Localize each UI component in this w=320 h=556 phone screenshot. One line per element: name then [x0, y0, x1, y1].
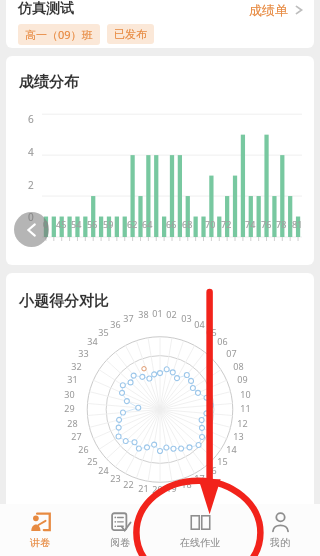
staticText: 成绩分布 [19, 73, 79, 92]
staticText: 小题得分对比 [19, 292, 109, 311]
staticText: 12 [237, 417, 248, 429]
staticText: 74 [245, 218, 256, 230]
staticText: 01 [152, 307, 163, 319]
button[interactable]: 阅卷 [80, 504, 160, 556]
staticText: 高一（09）班 [25, 27, 93, 42]
staticText: 29 [64, 402, 75, 414]
staticText: 20 [152, 483, 163, 495]
staticText: 72 [221, 218, 232, 230]
staticText: 27 [71, 430, 82, 442]
staticText: 0 [28, 210, 34, 224]
staticText: 56 [87, 218, 98, 230]
staticText: 06 [217, 335, 228, 347]
staticText: 6 [28, 112, 34, 126]
button[interactable]: 成绩单 [247, 0, 305, 20]
staticText: 4 [28, 145, 34, 159]
staticText: 22 [123, 478, 134, 490]
staticText: 45 [56, 218, 67, 230]
staticText: 10 [240, 388, 251, 400]
staticText: 54 [71, 218, 82, 230]
staticText: 34 [87, 335, 98, 347]
staticText: 03 [181, 312, 192, 324]
button[interactable]: 我的 [240, 504, 320, 556]
staticText: 讲卷 [30, 536, 50, 549]
staticText: 76 [261, 218, 272, 230]
staticText: 24 [98, 464, 109, 476]
staticText: 81 [292, 218, 303, 230]
staticText: 23 [110, 472, 121, 484]
staticText: 14 [226, 443, 237, 455]
staticText: 16 [206, 464, 217, 476]
staticText: 2 [28, 178, 34, 192]
staticText: 33 [78, 347, 89, 359]
button[interactable]: 在线作业 [160, 504, 240, 556]
staticText: 08 [233, 360, 244, 372]
staticText: 已发布 [114, 27, 147, 41]
staticText: 05 [206, 326, 217, 338]
staticText: 62 [127, 218, 138, 230]
staticText: 35 [98, 326, 109, 338]
staticText: 36 [110, 318, 121, 330]
staticText: 18 [181, 478, 192, 490]
staticText: 21 [138, 482, 149, 494]
button[interactable]: Scroll left [14, 212, 49, 247]
staticText: 19 [166, 482, 177, 494]
staticText: 07 [226, 347, 237, 359]
staticText: 我的 [270, 536, 290, 549]
staticText: 59 [103, 218, 114, 230]
staticText: 32 [71, 360, 82, 372]
staticText: 02 [166, 308, 177, 320]
staticText: 26 [78, 443, 89, 455]
button[interactable]: 讲卷 [0, 504, 80, 556]
staticText: 25 [87, 455, 98, 467]
staticText: 38 [138, 308, 149, 320]
staticText: 13 [233, 430, 244, 442]
staticText: 68 [182, 218, 193, 230]
staticText: 04 [194, 318, 205, 330]
staticText: 成绩单 [249, 2, 288, 18]
staticText: 64 [142, 218, 153, 230]
staticText: 28 [67, 417, 78, 429]
staticText: 78 [276, 218, 287, 230]
staticText: 在线作业 [180, 536, 220, 549]
staticText: 37 [123, 312, 134, 324]
staticText: 31 [67, 373, 78, 385]
staticText: 15 [217, 455, 228, 467]
staticText: 66 [166, 218, 177, 230]
staticText: 11 [240, 402, 251, 414]
staticText: 0 [43, 218, 49, 230]
staticText: 70 [205, 218, 216, 230]
staticText: 仿真测试 [18, 0, 74, 18]
staticText: 09 [237, 373, 248, 385]
staticText: 17 [194, 472, 205, 484]
staticText: 阅卷 [110, 536, 130, 549]
staticText: 30 [64, 388, 75, 400]
